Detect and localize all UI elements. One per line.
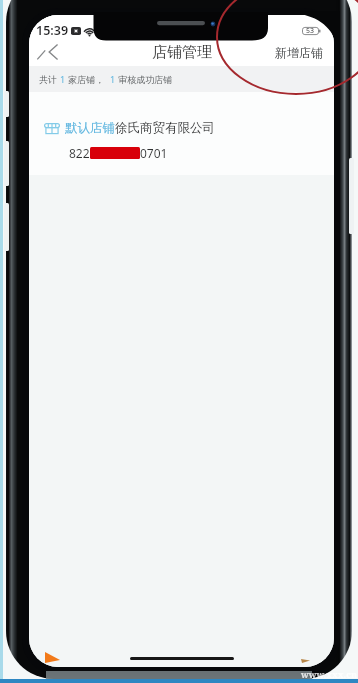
staticText: 53 bbox=[306, 26, 315, 36]
staticText: 审核成功店铺 bbox=[116, 73, 173, 85]
staticText: 15:39 bbox=[36, 22, 69, 39]
staticText: www.xxx.cn bbox=[301, 668, 357, 680]
button[interactable]: 默认店铺 bbox=[29, 92, 334, 175]
staticText: 822 bbox=[69, 145, 90, 161]
staticText: 1 bbox=[110, 73, 116, 85]
staticText: 新增店铺 bbox=[275, 45, 323, 60]
staticText: 徐氏商贸有限公司 bbox=[115, 120, 215, 136]
staticText: 家店铺， bbox=[66, 73, 110, 85]
staticText: 1 bbox=[60, 73, 66, 85]
staticText: 店铺管理 bbox=[152, 43, 212, 62]
staticText: 共计 bbox=[39, 73, 60, 85]
staticText: 默认店铺 bbox=[65, 120, 115, 136]
staticText: 0701 bbox=[140, 145, 168, 161]
button[interactable]: 新增店铺 bbox=[265, 39, 334, 66]
button[interactable]: Back bbox=[31, 38, 63, 66]
